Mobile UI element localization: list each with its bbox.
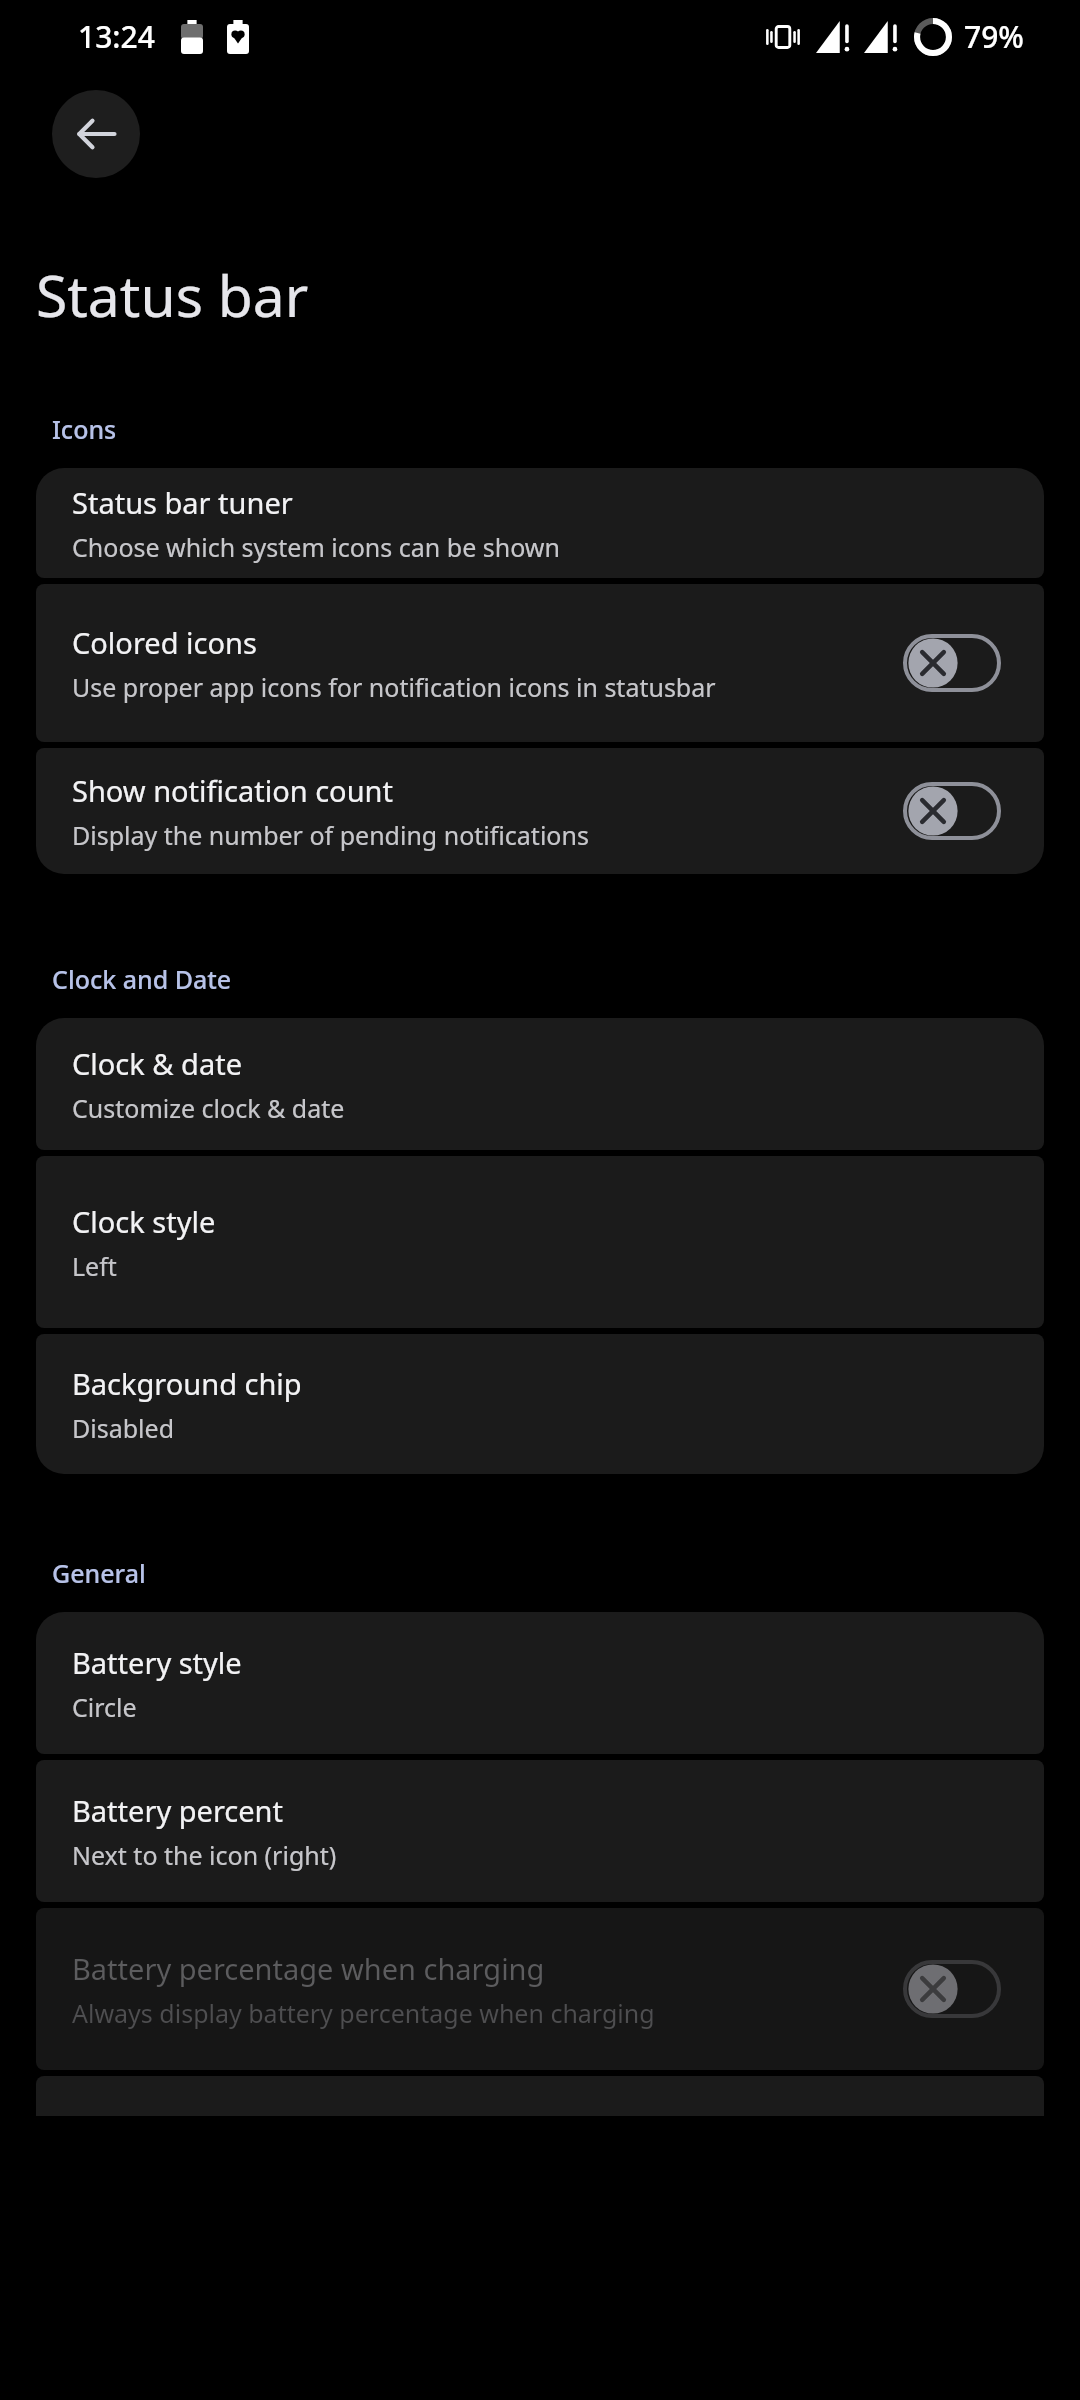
staticText: Display the number of pending notificati… [72, 818, 589, 852]
button[interactable]: Battery percent [36, 1760, 1044, 1902]
staticText: Clock and Date [52, 962, 232, 996]
button[interactable]: Status bar tuner [36, 468, 1044, 578]
staticText: Battery percent [72, 1791, 283, 1830]
button[interactable]: Toggle Show notification count [896, 775, 1008, 847]
staticText: Show notification count [72, 771, 393, 810]
button[interactable]: Toggle Colored icons [896, 627, 1008, 699]
button[interactable]: Back [52, 90, 140, 178]
button[interactable]: Background chip [36, 1334, 1044, 1474]
staticText: Clock & date [72, 1044, 242, 1083]
button[interactable]: Colored icons [36, 584, 1044, 742]
staticText: Colored icons [72, 623, 257, 662]
button[interactable]: Show notification count [36, 748, 1044, 874]
staticText: Icons [52, 412, 117, 446]
staticText: Left [72, 1249, 117, 1283]
button[interactable]: Clock style [36, 1156, 1044, 1328]
staticText: Always display battery percentage when c… [72, 1996, 655, 2030]
button[interactable]: Clock & date [36, 1018, 1044, 1150]
staticText: Status bar tuner [72, 483, 293, 522]
staticText: Background chip [72, 1364, 302, 1403]
staticText: Status bar [36, 256, 309, 334]
staticText: Choose which system icons can be shown [72, 530, 560, 564]
staticText: 79% [964, 16, 1024, 57]
button[interactable]: Toggle Battery percentage when charging [896, 1953, 1008, 2025]
button[interactable]: Battery percentage when charging [36, 1908, 1044, 2070]
staticText: Circle [72, 1690, 137, 1724]
staticText: General [52, 1556, 146, 1590]
staticText: Disabled [72, 1411, 175, 1445]
staticText: Use proper app icons for notification ic… [72, 670, 716, 704]
staticText: Battery style [72, 1643, 242, 1682]
staticText: Battery percentage when charging [72, 1949, 545, 1988]
staticText: Clock style [72, 1202, 216, 1241]
staticText: Next to the icon (right) [72, 1838, 337, 1872]
staticText: Customize clock & date [72, 1091, 345, 1125]
staticText: 13:24 [78, 16, 155, 57]
button[interactable]: Battery style [36, 1612, 1044, 1754]
